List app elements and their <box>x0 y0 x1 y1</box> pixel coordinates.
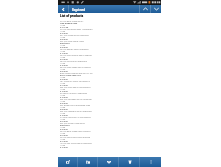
staticText: 33 Lum Body Shade 08061 bogstvd <box>60 130 91 132</box>
staticText: € 57 EUR <box>60 120 68 122</box>
button[interactable]: Previous <box>140 5 150 13</box>
staticText: 1 Nhb <box>60 94 66 96</box>
button[interactable]: Label <box>98 157 119 167</box>
staticText: € 39 EUR <box>60 46 68 48</box>
staticText: Bogstaved <box>72 8 86 11</box>
staticText: List of products <box>60 14 84 18</box>
staticText: Amd Brogard aadd <box>60 22 78 24</box>
staticText: 43 Lum Gloss Definer 08015 bogstvd <box>60 54 92 56</box>
staticText: 60 Lum Scalp Shade 08014 bogstvd <box>60 66 91 68</box>
staticText: € 64 EUR <box>60 134 68 136</box>
staticText: € 19 EUR <box>60 90 68 92</box>
staticText: € 31 EUR <box>60 140 68 142</box>
staticText: 1 Nhb <box>60 126 66 128</box>
staticText: bogstaved <box>60 124 70 126</box>
staticText: 1 Nhb <box>60 62 66 64</box>
staticText: € 42 EUR <box>60 96 68 98</box>
staticText: € 29 EUR <box>60 128 68 130</box>
staticText: 1 Nhb <box>60 36 66 38</box>
staticText: € 74 EUR <box>60 84 68 86</box>
staticText: 1 Nhb <box>60 56 66 58</box>
staticText: 1 Nhb <box>60 50 66 52</box>
staticText: List of products <box>60 14 84 18</box>
staticText: 1 Nhb <box>60 88 66 90</box>
button[interactable]: Camera <box>58 157 78 167</box>
staticText: € 64 EUR <box>60 58 68 60</box>
staticText: 044 Lum Scalp Shade 19024 <box>60 40 85 42</box>
staticText: € 12 EUR <box>60 52 68 54</box>
staticText: 1 Nhb <box>60 82 66 84</box>
staticText: Rnd 4 Saake add2 0103 <box>60 74 81 76</box>
button[interactable]: Folder <box>78 157 98 167</box>
button[interactable]: Next <box>151 5 161 13</box>
staticText: € 18 EUR <box>60 114 68 116</box>
staticText: € 75 EUR <box>60 32 68 34</box>
staticText: € 45 EUR <box>60 64 68 66</box>
staticText: bogstaved <box>60 42 70 44</box>
staticText: € 32 EUR <box>60 78 68 80</box>
button[interactable]: Delete <box>119 157 140 167</box>
staticText: 1 Nhb <box>60 144 66 146</box>
staticText: 055 Lum Flash 080 09 Seal Bogstvd <box>60 86 91 88</box>
staticText: 044 Lum Primer Nude 08044 <box>60 122 85 124</box>
button[interactable]: More options <box>140 157 161 167</box>
staticText: 1 Nhb <box>60 118 66 120</box>
button[interactable]: Back <box>58 5 68 13</box>
staticText: 1 Nhb <box>60 44 66 46</box>
staticText: 1 Nhb <box>60 76 66 78</box>
staticText: 41 Onyx Cobra 0907 S Seal Bogstvd <box>60 116 91 118</box>
staticText: 044 Builder 08019 bogstaved nude <box>60 104 91 106</box>
staticText: 46 Lum Scrub 08/33 bogstaved <box>60 60 87 62</box>
staticText: € 47 EUR <box>60 146 68 148</box>
staticText: 07 Offsys Lab 08017 bogstaved <box>60 92 87 94</box>
staticText: 1 Nhb <box>60 68 66 70</box>
staticText: 1 Nhb <box>60 106 66 108</box>
staticText: 27 Lum Soft Define 0902 7 bogstaved <box>60 28 93 30</box>
staticText: 22 Lum Shine Gloss 08022 bogstvd <box>60 136 91 138</box>
staticText: € 88 EUR <box>60 108 68 110</box>
staticText: 041 Lum Cream 08/24 bogstaved <box>60 34 89 36</box>
staticText: 1 Nhb <box>60 24 66 26</box>
staticText: 49 Lum Render 08037 bogstaved <box>60 48 89 50</box>
staticText: 1 Nhb <box>60 138 66 140</box>
staticText: Black HD88 complete Eye Set Ns 2 stk <box>60 72 93 74</box>
staticText: 781 Lum88 PS Classic Set 080090 2 <box>60 80 91 82</box>
staticText: 27 Lum Body Shake 080 07 <box>60 20 84 22</box>
staticText: 1 Nhb <box>60 100 66 102</box>
staticText: € 85 EUR <box>60 38 68 40</box>
staticText: € 72,0 UR <box>60 26 69 28</box>
staticText: € 25 EUR <box>60 102 68 104</box>
staticText: 045 Lum Highlight 080 04 bogstaved <box>60 110 92 112</box>
staticText: 1 Nhb <box>60 112 66 114</box>
staticText: 12 Lum Sun Cream 08013 bogstaved <box>60 142 92 144</box>
staticText: € 55 EUR <box>60 70 68 72</box>
staticText: 1 Nhb <box>60 132 66 134</box>
staticText: 049 Lum Cascades 080 09 Cocoa Bgs <box>60 98 92 100</box>
staticText: 1 Nhb <box>60 30 66 32</box>
